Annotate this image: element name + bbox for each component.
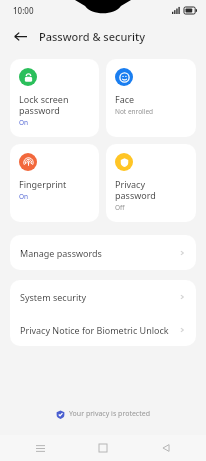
staticText: 10:00 xyxy=(13,5,34,16)
staticText: Off xyxy=(115,203,125,212)
button[interactable]: Fingerprint xyxy=(10,144,99,222)
staticText: System security xyxy=(20,291,87,303)
button[interactable]: Privacy password xyxy=(106,144,196,222)
staticText: Not enrolled xyxy=(115,107,154,116)
button[interactable]: Back xyxy=(156,438,176,458)
button[interactable]: System security xyxy=(10,280,196,313)
staticText: Manage passwords xyxy=(20,247,102,259)
button[interactable]: Lock screen password xyxy=(10,59,99,137)
staticText: Privacy Notice for Biometric Unlock xyxy=(20,324,169,336)
button[interactable]: Recent apps xyxy=(30,438,50,458)
staticText: Privacy password xyxy=(115,178,156,201)
button[interactable]: Manage passwords xyxy=(10,235,196,270)
staticText: Fingerprint xyxy=(19,178,67,190)
button[interactable]: Back xyxy=(8,24,32,48)
button[interactable]: Face xyxy=(106,59,196,137)
staticText: Face xyxy=(115,93,135,105)
button[interactable]: Privacy Notice for Biometric Unlock xyxy=(10,313,196,346)
staticText: Your privacy is protected xyxy=(69,409,151,419)
staticText: On xyxy=(19,118,29,127)
staticText: Lock screen password xyxy=(19,93,69,116)
button[interactable]: Home xyxy=(93,438,113,458)
staticText: On xyxy=(19,192,29,201)
staticText: Password & security xyxy=(39,29,145,44)
